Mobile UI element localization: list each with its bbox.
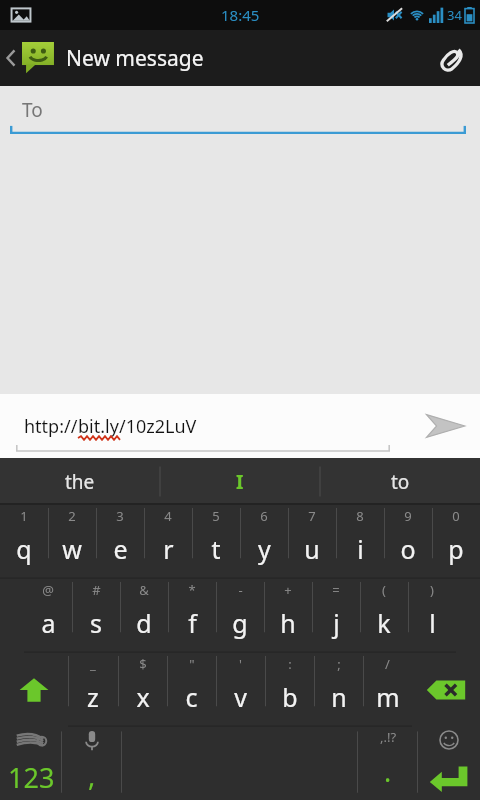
staticText: the: [65, 469, 95, 495]
staticText: I: [236, 469, 244, 495]
staticText: :: [288, 655, 292, 673]
button[interactable]: ': [216, 653, 265, 727]
staticText: 0: [452, 507, 460, 525]
staticText: d: [136, 606, 152, 640]
button[interactable]: 1: [0, 505, 48, 579]
button[interactable]: +: [264, 579, 312, 653]
button[interactable]: To: [0, 86, 480, 142]
staticText: o: [400, 532, 416, 566]
button[interactable]: (: [360, 579, 408, 653]
staticText: 18:45: [221, 5, 260, 25]
staticText: @: [42, 581, 54, 599]
staticText: s: [90, 606, 102, 640]
button[interactable]: *: [168, 579, 216, 653]
staticText: /10z2LuV: [119, 414, 197, 439]
staticText: 9: [404, 507, 412, 525]
button[interactable]: 2: [48, 505, 96, 579]
button[interactable]: @: [24, 579, 72, 653]
button[interactable]: &: [120, 579, 168, 653]
staticText: 7: [308, 507, 316, 525]
button[interactable]: to: [320, 458, 480, 505]
button[interactable]: _: [68, 653, 118, 727]
staticText: m: [376, 680, 400, 714]
button[interactable]: Send: [410, 394, 480, 458]
staticText: g: [232, 606, 248, 640]
staticText: New message: [66, 44, 204, 73]
staticText: w: [62, 532, 82, 566]
button[interactable]: 9: [384, 505, 432, 579]
staticText: p: [448, 532, 464, 566]
button[interactable]: 5: [192, 505, 240, 579]
staticText: ,: [88, 757, 96, 794]
staticText: b: [282, 680, 298, 714]
button[interactable]: Backspace: [412, 653, 480, 727]
staticText: k: [377, 606, 391, 640]
staticText: ;: [337, 655, 341, 673]
staticText: a: [41, 606, 56, 640]
button[interactable]: ;: [314, 653, 363, 727]
button[interactable]: 6: [240, 505, 288, 579]
staticText: 4: [164, 507, 172, 525]
button[interactable]: Comma: [62, 727, 122, 800]
button[interactable]: Back: [0, 42, 212, 74]
staticText: 2: [68, 507, 76, 525]
button[interactable]: Period: [358, 727, 418, 800]
staticText: 8: [356, 507, 364, 525]
button[interactable]: ": [167, 653, 216, 727]
button[interactable]: :: [265, 653, 314, 727]
staticText: to: [391, 469, 410, 495]
staticText: 123: [8, 759, 55, 796]
staticText: z: [87, 680, 99, 714]
staticText: /: [385, 655, 390, 673]
staticText: =: [332, 581, 340, 599]
button[interactable]: 8: [336, 505, 384, 579]
staticText: -: [238, 581, 243, 599]
staticText: 3: [116, 507, 124, 525]
button[interactable]: 123: [0, 727, 62, 800]
staticText: http://: [24, 414, 78, 439]
staticText: n: [331, 680, 347, 714]
button[interactable]: $: [118, 653, 167, 727]
button[interactable]: #: [72, 579, 120, 653]
button[interactable]: Attach: [424, 30, 480, 86]
staticText: i: [357, 532, 364, 566]
staticText: 1: [20, 507, 28, 525]
staticText: u: [304, 532, 320, 566]
staticText: t: [211, 532, 221, 566]
button[interactable]: 4: [144, 505, 192, 579]
staticText: x: [136, 680, 150, 714]
button[interactable]: =: [312, 579, 360, 653]
staticText: ): [430, 581, 434, 599]
button[interactable]: Enter: [418, 727, 480, 800]
staticText: 6: [260, 507, 268, 525]
staticText: &: [139, 581, 149, 599]
staticText: To: [22, 97, 43, 123]
button[interactable]: 0: [432, 505, 480, 579]
button[interactable]: http://: [24, 414, 197, 439]
staticText: ': [239, 655, 242, 673]
staticText: h: [280, 606, 296, 640]
button[interactable]: Shift: [0, 653, 68, 727]
staticText: 34: [447, 6, 462, 24]
button[interactable]: /: [363, 653, 412, 727]
staticText: $: [139, 655, 147, 673]
button[interactable]: I: [160, 458, 320, 505]
staticText: *: [188, 581, 196, 599]
staticText: #: [92, 581, 101, 599]
staticText: bit.ly: [78, 414, 119, 439]
staticText: +: [284, 581, 292, 599]
staticText: 5: [212, 507, 220, 525]
staticText: .: [384, 753, 392, 790]
staticText: c: [185, 680, 198, 714]
button[interactable]: ): [408, 579, 456, 653]
staticText: ,.!?: [380, 728, 397, 746]
staticText: e: [113, 532, 128, 566]
button[interactable]: -: [216, 579, 264, 653]
button[interactable]: the: [0, 458, 160, 505]
staticText: j: [333, 606, 340, 640]
button[interactable]: 3: [96, 505, 144, 579]
staticText: r: [163, 532, 174, 566]
staticText: v: [234, 680, 247, 714]
button[interactable]: 7: [288, 505, 336, 579]
